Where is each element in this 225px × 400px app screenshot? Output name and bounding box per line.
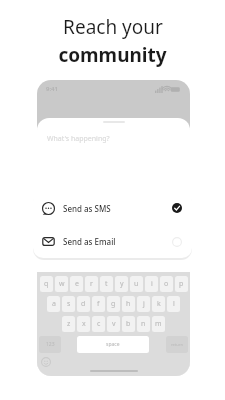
staticText: e [75, 279, 79, 289]
staticText: i [151, 279, 153, 289]
staticText: n [141, 319, 146, 329]
button[interactable]: b [122, 316, 135, 332]
button[interactable]: g [107, 296, 120, 312]
button[interactable]: l [167, 296, 180, 312]
button[interactable]: n [137, 316, 150, 332]
button[interactable]: h [122, 296, 135, 312]
staticText: community [58, 42, 167, 68]
staticText: j [143, 299, 145, 309]
staticText: r [90, 279, 93, 289]
button[interactable]: i [145, 276, 158, 292]
staticText: space [106, 341, 120, 348]
button[interactable]: p [175, 276, 188, 292]
button[interactable]: o [160, 276, 173, 292]
button[interactable]: Send as Email [33, 225, 192, 258]
button[interactable]: q [40, 276, 53, 292]
button[interactable]: c [92, 316, 105, 332]
staticText: Send as SMS [63, 203, 111, 214]
staticText: k [157, 299, 161, 309]
staticText: s [67, 299, 71, 309]
staticText: v [112, 319, 116, 329]
staticText: q [44, 279, 49, 289]
button[interactable]: s [62, 296, 75, 312]
staticText: o [164, 279, 169, 289]
button[interactable]: space [77, 336, 149, 353]
staticText: x [82, 319, 86, 329]
staticText: z [67, 319, 71, 329]
button[interactable]: Send [165, 301, 181, 317]
staticText: Send as Email [63, 236, 116, 247]
staticText: c [97, 319, 101, 329]
button[interactable]: d [77, 296, 90, 312]
staticText: return [171, 342, 183, 347]
button[interactable]: j [137, 296, 150, 312]
staticText: 123 [46, 341, 55, 348]
button[interactable]: Emoji [41, 357, 51, 367]
button[interactable]: w [55, 276, 68, 292]
button[interactable]: f [92, 296, 105, 312]
button[interactable]: y [115, 276, 128, 292]
button[interactable]: k [152, 296, 165, 312]
staticText: h [126, 299, 131, 309]
button[interactable]: z [62, 316, 75, 332]
button[interactable]: a [47, 296, 60, 312]
staticText: t [105, 279, 108, 289]
button[interactable]: r [85, 276, 98, 292]
staticText: What's happening? [47, 134, 110, 144]
staticText: b [126, 319, 131, 329]
button[interactable]: t [100, 276, 113, 292]
staticText: 9:41 [46, 85, 58, 93]
button[interactable]: v [107, 316, 120, 332]
staticText: Reach your [63, 14, 163, 40]
button[interactable]: m [152, 316, 165, 332]
staticText: y [120, 279, 124, 289]
staticText: g [111, 299, 116, 309]
button[interactable]: u [130, 276, 143, 292]
button[interactable]: x [77, 316, 90, 332]
staticText: f [97, 299, 100, 309]
button[interactable]: e [70, 276, 83, 292]
staticText: l [173, 299, 175, 309]
staticText: u [134, 279, 139, 289]
staticText: w [59, 279, 65, 289]
staticText: m [155, 319, 162, 329]
staticText: d [81, 299, 86, 309]
staticText: p [179, 279, 184, 289]
staticText: a [52, 299, 56, 309]
button[interactable]: Send as SMS [33, 191, 192, 225]
